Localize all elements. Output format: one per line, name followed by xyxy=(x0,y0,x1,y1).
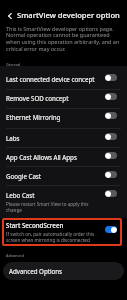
staticText: Please restart Smart View to apply this … xyxy=(6,201,101,213)
button[interactable]: Start SecondScreen xyxy=(2,218,122,246)
button[interactable]: Google Cast xyxy=(0,166,127,185)
staticText: This is SmartView developer options page… xyxy=(6,25,122,53)
button[interactable]: Switch off xyxy=(105,93,117,100)
button[interactable]: App Cast Allows All Apps xyxy=(0,147,127,166)
staticText: General xyxy=(6,62,21,67)
button[interactable]: Last connected device concept xyxy=(0,70,127,89)
button[interactable]: Switch off xyxy=(105,133,117,140)
staticText: SmartView developer option xyxy=(17,10,120,20)
button[interactable]: Switch off xyxy=(105,171,117,178)
staticText: Advanced xyxy=(6,253,24,258)
button[interactable]: Advanced Options xyxy=(3,262,124,280)
staticText: Last connected device concept xyxy=(6,75,95,83)
button[interactable]: Switch off xyxy=(105,74,117,81)
button[interactable]: Remove SOD concept xyxy=(0,89,127,108)
button[interactable]: Switch off xyxy=(105,112,117,119)
button[interactable]: Back xyxy=(3,9,17,23)
button[interactable]: Lebo Cast xyxy=(0,185,127,212)
staticText: Lebo Cast xyxy=(6,191,35,199)
button[interactable]: Switch on xyxy=(105,226,117,233)
button[interactable]: Ethernet Mirroring xyxy=(0,108,127,128)
button[interactable]: Switch off xyxy=(105,190,117,197)
staticText: Ethernet Mirroring xyxy=(6,113,61,121)
button[interactable]: Switch off xyxy=(105,152,117,159)
staticText: Advanced Options xyxy=(9,267,63,275)
staticText: Labs xyxy=(6,134,20,142)
staticText: Start SecondScreen xyxy=(6,221,64,229)
staticText: If switch on, pair automatically order t… xyxy=(6,231,99,243)
staticText: App Cast Allows All Apps xyxy=(6,153,77,161)
staticText: Google Cast xyxy=(6,172,42,180)
staticText: Remove SOD concept xyxy=(6,94,69,102)
button[interactable]: Labs xyxy=(0,128,127,147)
